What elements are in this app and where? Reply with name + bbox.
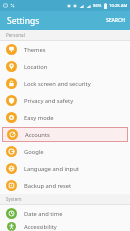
staticText: 86% — [93, 3, 102, 9]
staticText: SEARCH — [106, 17, 125, 24]
other: Privacy and safety — [6, 95, 17, 106]
other: Accounts — [7, 129, 18, 140]
button[interactable]: Backup and reset — [0, 177, 130, 194]
other: Lock screen and security — [6, 78, 17, 89]
other: Location — [6, 61, 17, 72]
staticText: 10:25 AM — [109, 3, 128, 9]
button[interactable]: SEARCH — [101, 13, 130, 28]
other: Date and time — [6, 208, 17, 219]
button[interactable]: Date and time — [0, 205, 130, 222]
staticText: Personal — [6, 32, 25, 38]
button[interactable]: Themes — [0, 41, 130, 58]
staticText: Easy mode — [24, 114, 54, 122]
staticText: Language and input — [24, 165, 79, 173]
other: Themes — [6, 44, 17, 55]
staticText: Accounts — [25, 131, 50, 139]
staticText: System — [6, 196, 22, 202]
staticText: Lock screen and security — [24, 80, 91, 88]
staticText: Date and time — [24, 210, 63, 218]
staticText: Themes — [24, 46, 46, 54]
button[interactable]: Privacy and safety — [0, 92, 130, 109]
staticText: Backup and reset — [24, 182, 72, 190]
staticText: Accessibility — [24, 223, 57, 231]
other: Accessibility — [6, 222, 17, 231]
staticText: Location — [24, 63, 48, 71]
button[interactable]: Accounts — [2, 127, 128, 142]
button[interactable]: Location — [0, 58, 130, 75]
other: Google — [6, 146, 17, 157]
button[interactable]: Accessibility — [0, 222, 130, 231]
staticText: Google — [24, 148, 44, 156]
staticText: Privacy and safety — [24, 97, 74, 105]
button[interactable]: Lock screen and security — [0, 75, 130, 92]
button[interactable]: Google — [0, 143, 130, 160]
staticText: Settings — [7, 15, 40, 27]
other: Backup and reset — [6, 180, 17, 191]
other: Easy mode — [6, 112, 17, 123]
button[interactable]: Language and input — [0, 160, 130, 177]
other: Language and input — [6, 163, 17, 174]
button[interactable]: Easy mode — [0, 109, 130, 126]
